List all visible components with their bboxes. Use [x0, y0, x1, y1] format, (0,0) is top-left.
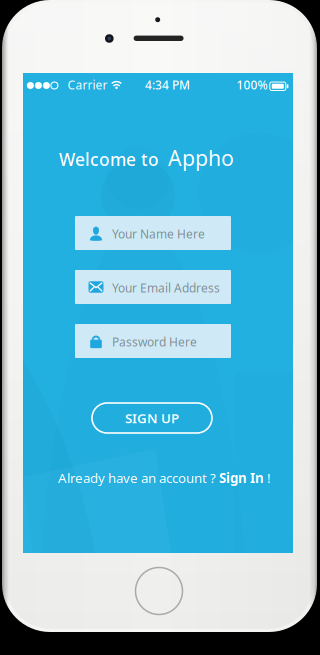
button[interactable]: Your Email Address	[75, 270, 231, 304]
staticText: !	[264, 469, 271, 487]
button[interactable]: Your Name Here	[75, 216, 231, 250]
button[interactable]: Password Here	[75, 324, 231, 358]
staticText: Welcome to	[59, 148, 159, 171]
staticText: Appho	[168, 143, 234, 172]
staticText: SIGN UP	[125, 409, 179, 427]
staticText: Your Name Here	[112, 226, 205, 242]
button[interactable]: SIGN UP	[92, 403, 212, 433]
staticText: 4:34 PM	[145, 77, 190, 93]
staticText: Password Here	[112, 334, 197, 350]
staticText: Sign In	[219, 469, 264, 487]
button[interactable]: Sign In	[219, 469, 264, 487]
staticText: 100%	[236, 77, 267, 93]
staticText: Carrier	[67, 77, 107, 93]
staticText: Your Email Address	[112, 280, 220, 296]
staticText: Already have an account ?	[58, 469, 219, 487]
